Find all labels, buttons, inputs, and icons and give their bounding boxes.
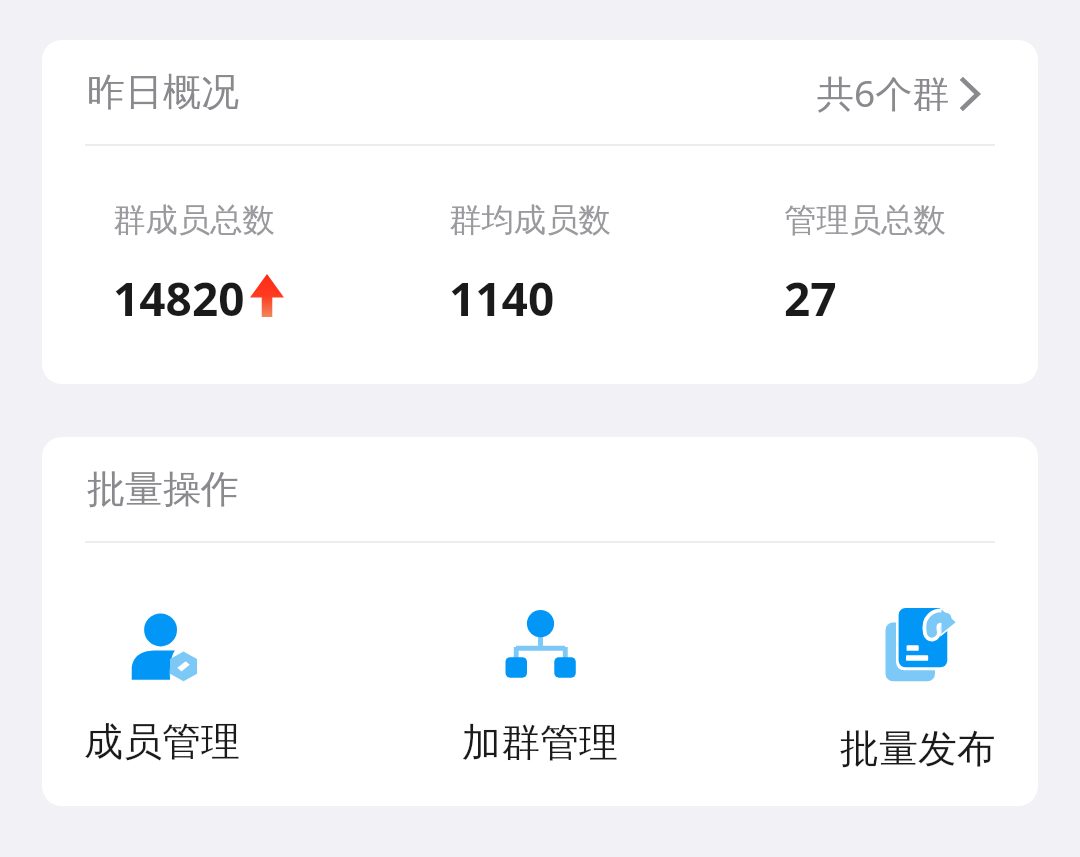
staticText: 加群管理 xyxy=(462,718,618,767)
staticText: 昨日概况 xyxy=(87,68,239,116)
staticText: 27 xyxy=(784,267,837,330)
button[interactable]: 昨日概况 xyxy=(42,40,1038,144)
staticText: 批量操作 xyxy=(87,465,239,513)
button[interactable]: 成员管理 xyxy=(42,612,282,766)
button[interactable]: 批量发布 xyxy=(798,612,1038,773)
staticText: 成员管理 xyxy=(84,717,240,766)
staticText: 批量发布 xyxy=(840,724,996,773)
staticText: 群成员总数 xyxy=(113,200,275,241)
staticText: 共6个群 xyxy=(817,67,950,118)
staticText: 管理员总数 xyxy=(784,200,946,241)
staticText: 群均成员数 xyxy=(449,200,611,241)
staticText: 14820 xyxy=(113,267,245,330)
button[interactable]: 加群管理 xyxy=(420,612,660,767)
staticText: 1140 xyxy=(449,267,555,330)
